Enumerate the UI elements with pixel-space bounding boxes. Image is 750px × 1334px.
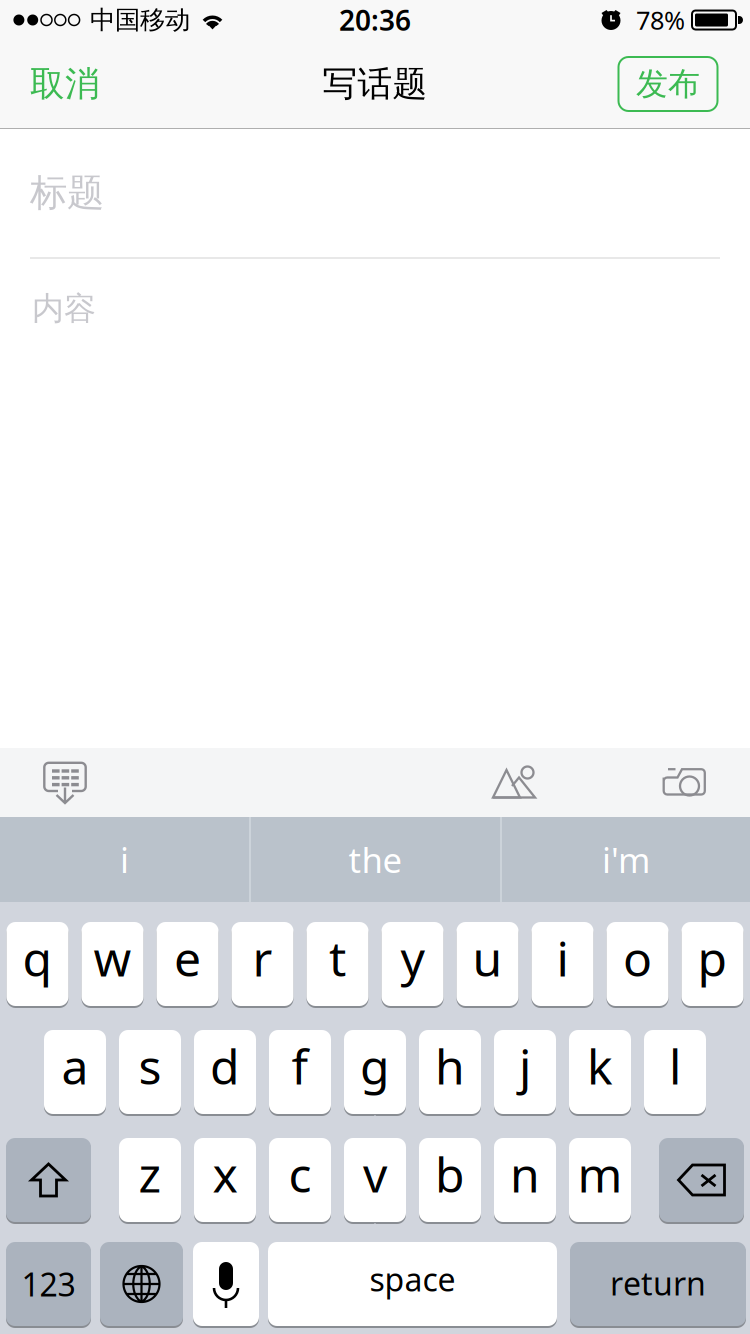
button[interactable]: 123: [6, 1241, 91, 1327]
staticText: g: [360, 1034, 390, 1098]
button[interactable]: return: [570, 1241, 746, 1327]
staticText: space: [369, 1258, 455, 1300]
button[interactable]: 取消: [0, 40, 130, 128]
button[interactable]: i: [0, 817, 249, 902]
button[interactable]: o: [606, 921, 668, 1007]
button[interactable]: t: [306, 921, 368, 1007]
button[interactable]: space: [268, 1241, 557, 1327]
button[interactable]: i: [531, 921, 593, 1007]
button[interactable]: e: [156, 921, 218, 1007]
staticText: f: [291, 1034, 308, 1098]
button[interactable]: s: [119, 1029, 181, 1115]
button[interactable]: l: [644, 1029, 706, 1115]
button[interactable]: Photo library: [461, 748, 571, 817]
button[interactable]: p: [681, 921, 743, 1007]
button[interactable]: k: [569, 1029, 631, 1115]
button[interactable]: Shift: [6, 1137, 91, 1223]
button[interactable]: d: [194, 1029, 256, 1115]
staticText: i'm: [602, 836, 650, 882]
button[interactable]: the: [251, 817, 500, 902]
staticText: 78%: [636, 3, 685, 37]
button[interactable]: u: [456, 921, 518, 1007]
staticText: m: [577, 1142, 622, 1206]
button[interactable]: x: [194, 1137, 256, 1223]
staticText: o: [623, 926, 652, 990]
staticText: 标题: [30, 170, 104, 216]
staticText: y: [400, 926, 424, 990]
staticText: c: [288, 1142, 311, 1206]
staticText: 内容: [32, 289, 96, 328]
staticText: 20:36: [339, 1, 411, 39]
staticText: 中国移动: [90, 4, 190, 35]
staticText: b: [435, 1142, 465, 1206]
button[interactable]: Hide keyboard: [0, 748, 130, 817]
staticText: x: [212, 1142, 237, 1206]
button[interactable]: a: [44, 1029, 106, 1115]
button[interactable]: Camera: [631, 748, 741, 817]
button[interactable]: 发布: [618, 40, 718, 128]
staticText: a: [61, 1034, 88, 1098]
staticText: n: [510, 1142, 540, 1206]
button[interactable]: m: [569, 1137, 631, 1223]
staticText: e: [174, 926, 201, 990]
button[interactable]: f: [269, 1029, 331, 1115]
staticText: 发布: [636, 64, 700, 104]
staticText: q: [22, 926, 52, 990]
button[interactable]: Delete: [659, 1137, 744, 1223]
button[interactable]: c: [269, 1137, 331, 1223]
staticText: v: [363, 1142, 387, 1206]
staticText: d: [210, 1034, 240, 1098]
staticText: p: [697, 926, 727, 990]
staticText: l: [669, 1034, 681, 1098]
button[interactable]: w: [81, 921, 143, 1007]
staticText: the: [348, 836, 402, 882]
button[interactable]: r: [231, 921, 293, 1007]
staticText: i: [556, 926, 568, 990]
staticText: 写话题: [322, 63, 427, 105]
staticText: w: [93, 926, 131, 990]
staticText: return: [610, 1262, 706, 1304]
button[interactable]: Dictate: [193, 1241, 259, 1327]
staticText: 取消: [30, 63, 100, 105]
button[interactable]: z: [119, 1137, 181, 1223]
button[interactable]: b: [419, 1137, 481, 1223]
staticText: u: [472, 926, 502, 990]
button[interactable]: 标题: [0, 129, 750, 257]
button[interactable]: n: [494, 1137, 556, 1223]
button[interactable]: Change keyboard: [100, 1241, 183, 1327]
staticText: 123: [21, 1263, 75, 1305]
staticText: j: [519, 1034, 531, 1098]
staticText: i: [120, 836, 129, 882]
button[interactable]: j: [494, 1029, 556, 1115]
staticText: h: [435, 1034, 465, 1098]
button[interactable]: i'm: [502, 817, 750, 902]
button[interactable]: q: [6, 921, 68, 1007]
staticText: r: [252, 926, 272, 990]
button[interactable]: h: [419, 1029, 481, 1115]
staticText: s: [138, 1034, 161, 1098]
button[interactable]: y: [381, 921, 443, 1007]
button[interactable]: v: [344, 1137, 406, 1223]
button[interactable]: g: [344, 1029, 406, 1115]
staticText: k: [587, 1034, 613, 1098]
staticText: t: [329, 926, 346, 990]
staticText: z: [138, 1142, 161, 1206]
